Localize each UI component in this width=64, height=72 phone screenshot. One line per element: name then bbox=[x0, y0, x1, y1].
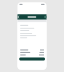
button[interactable]: Back bbox=[17, 15, 20, 19]
button[interactable] bbox=[19, 57, 45, 61]
button[interactable]: More bbox=[44, 16, 47, 18]
